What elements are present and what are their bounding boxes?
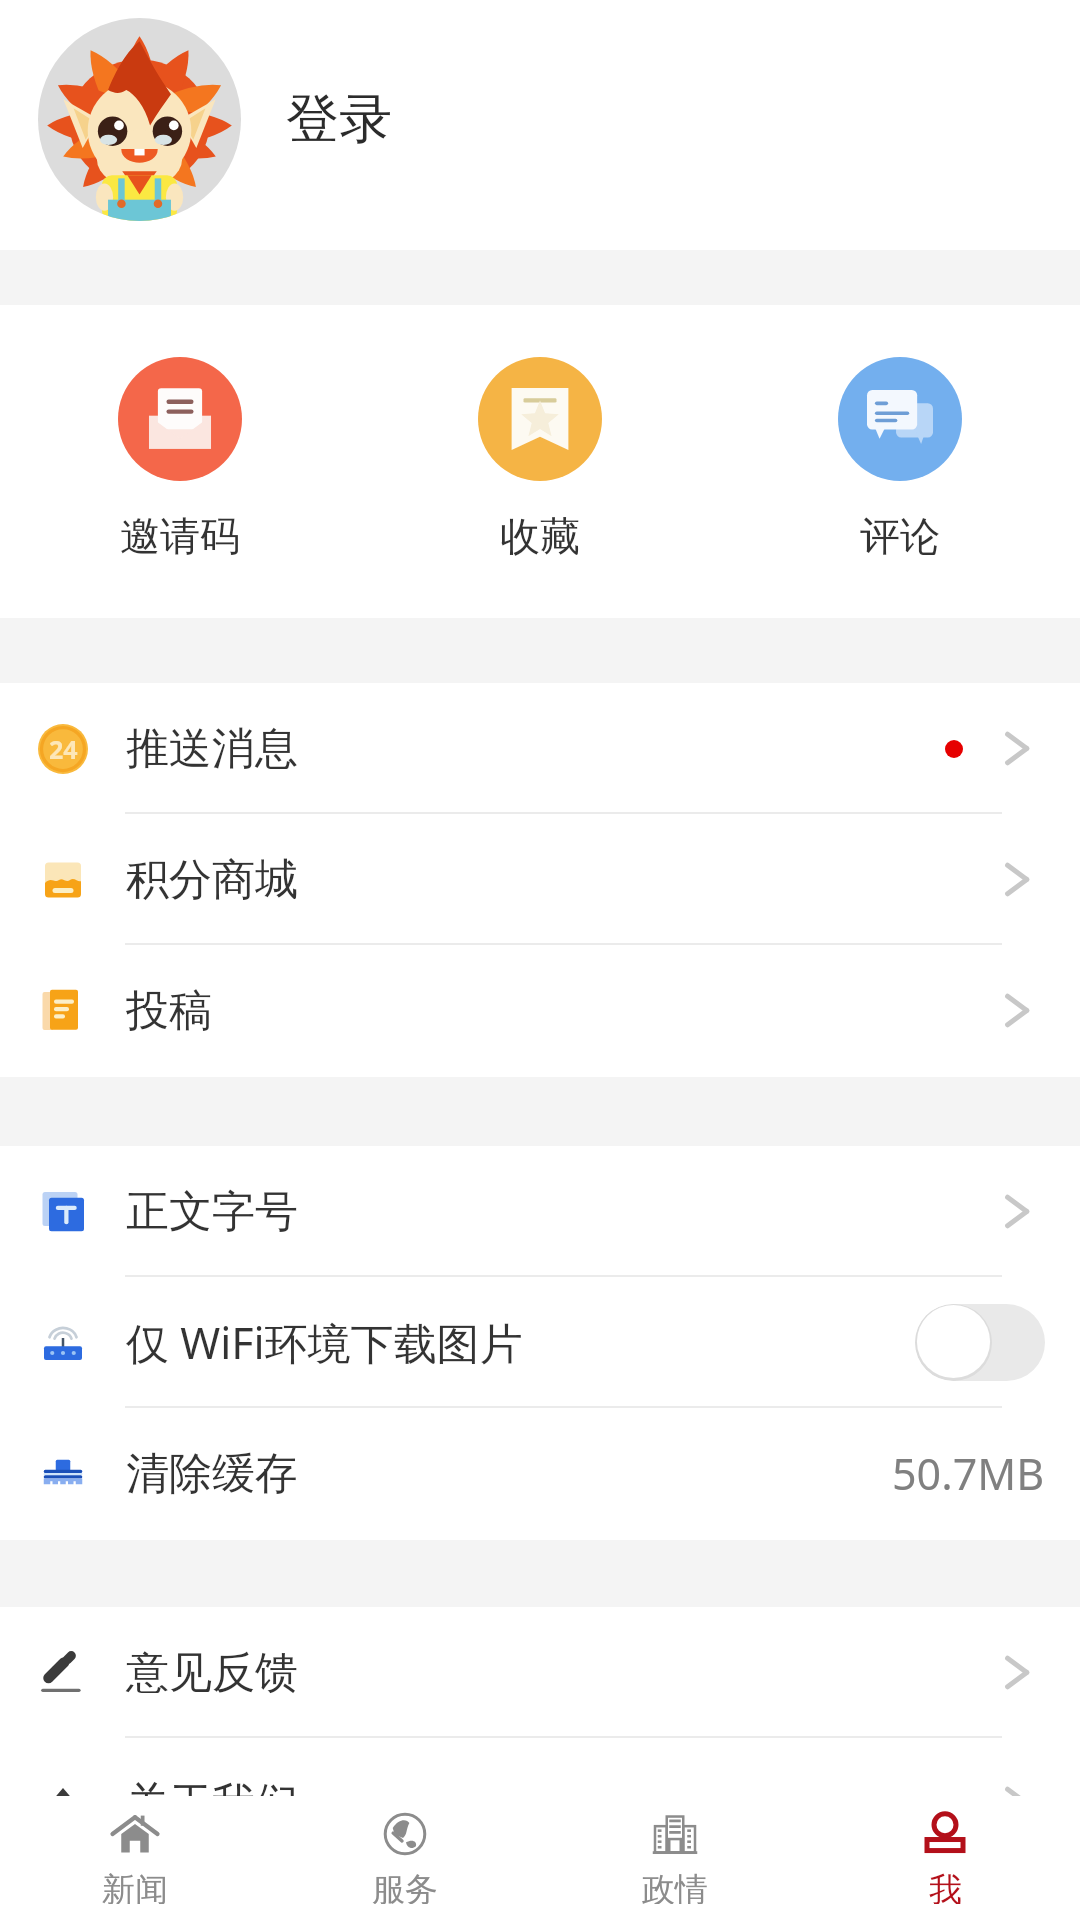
staticText: 24 bbox=[49, 732, 78, 766]
staticText: 政情 bbox=[642, 1869, 708, 1904]
staticText: 推送消息 bbox=[126, 722, 298, 776]
button[interactable]: 投稿 bbox=[0, 945, 1080, 1076]
button[interactable]: 积分商城 bbox=[0, 814, 1080, 945]
button[interactable]: 关于我们 bbox=[0, 1738, 1080, 1869]
button[interactable]: 登录 bbox=[0, 0, 1080, 250]
staticText: 意见反馈 bbox=[126, 1646, 298, 1700]
button[interactable]: 意见反馈 bbox=[0, 1607, 1080, 1738]
button[interactable]: 评论 bbox=[720, 305, 1080, 618]
staticText: 50.7MB bbox=[892, 1444, 1045, 1503]
staticText: 清除缓存 bbox=[126, 1447, 298, 1501]
staticText: 收藏 bbox=[500, 511, 580, 561]
staticText: 我 bbox=[929, 1869, 962, 1904]
staticText: 投稿 bbox=[126, 984, 212, 1038]
staticText: 关于我们 bbox=[126, 1777, 298, 1831]
staticText: 登录 bbox=[286, 86, 392, 153]
button[interactable]: 新闻 bbox=[0, 1796, 270, 1920]
button[interactable]: 正文字号 bbox=[0, 1146, 1080, 1277]
staticText: 服务 bbox=[372, 1869, 438, 1904]
button[interactable]: 清除缓存 bbox=[0, 1408, 1080, 1539]
staticText: 仅 WiFi环境下载图片 bbox=[126, 1313, 523, 1372]
staticText: 邀请码 bbox=[120, 511, 240, 561]
button[interactable]: 邀请码 bbox=[0, 305, 360, 618]
button[interactable]: 收藏 bbox=[360, 305, 720, 618]
button[interactable]: 服务 bbox=[270, 1796, 540, 1920]
staticText: 积分商城 bbox=[126, 853, 298, 907]
staticText: 新闻 bbox=[102, 1869, 168, 1904]
staticText: 正文字号 bbox=[126, 1185, 298, 1239]
button[interactable]: 24 bbox=[0, 683, 1080, 814]
button[interactable]: 仅 WiFi环境下载图片 bbox=[0, 1277, 1080, 1408]
button[interactable]: 仅 WiFi 环境下载图片 开关 bbox=[915, 1304, 1045, 1381]
button[interactable]: 我 bbox=[810, 1796, 1080, 1920]
staticText: 评论 bbox=[860, 511, 940, 561]
button[interactable]: 政情 bbox=[540, 1796, 810, 1920]
